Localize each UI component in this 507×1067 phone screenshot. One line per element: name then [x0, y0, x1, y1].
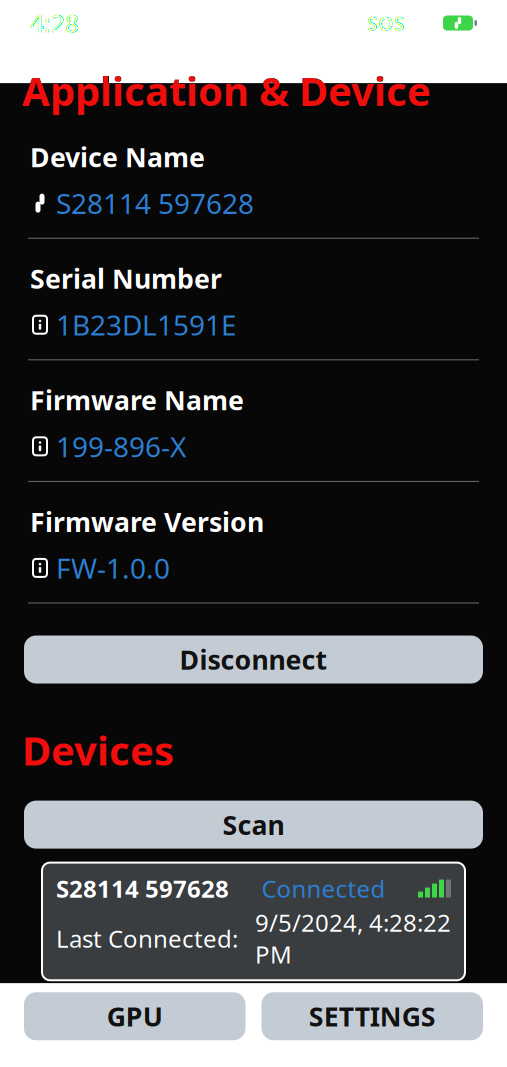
staticText: Scan — [222, 807, 284, 842]
staticText: SETTINGS — [309, 998, 436, 1034]
staticText: 199-896-X — [56, 428, 186, 465]
button[interactable]: Scan — [24, 801, 483, 849]
staticText: S28114 597628 — [56, 873, 229, 904]
staticText: Firmware Version — [30, 504, 264, 539]
staticText: Device Name — [30, 139, 205, 174]
staticText: Disconnect — [179, 642, 327, 677]
button[interactable]: S28114 597628 — [42, 863, 465, 980]
staticText: FW-1.0.0 — [56, 549, 170, 586]
button[interactable]: GPU — [24, 992, 245, 1040]
staticText: Application & Device — [22, 64, 431, 117]
staticText: Devices — [22, 723, 174, 777]
staticText: 1B23DL1591E — [56, 306, 237, 343]
button[interactable]: SETTINGS — [261, 992, 483, 1040]
staticText: Firmware Name — [30, 382, 244, 418]
staticText: GPU — [107, 998, 163, 1034]
staticText: S28114 597628 — [56, 184, 254, 222]
button[interactable]: Disconnect — [24, 635, 483, 683]
staticText: 9/5/2024, 4:28:22 PM — [255, 906, 451, 970]
staticText: 4:28 — [30, 6, 79, 40]
staticText: Last Connected: — [56, 922, 238, 954]
staticText: Serial Number — [30, 261, 222, 296]
staticText: Connected — [261, 873, 385, 904]
staticText: SOS — [367, 10, 405, 36]
